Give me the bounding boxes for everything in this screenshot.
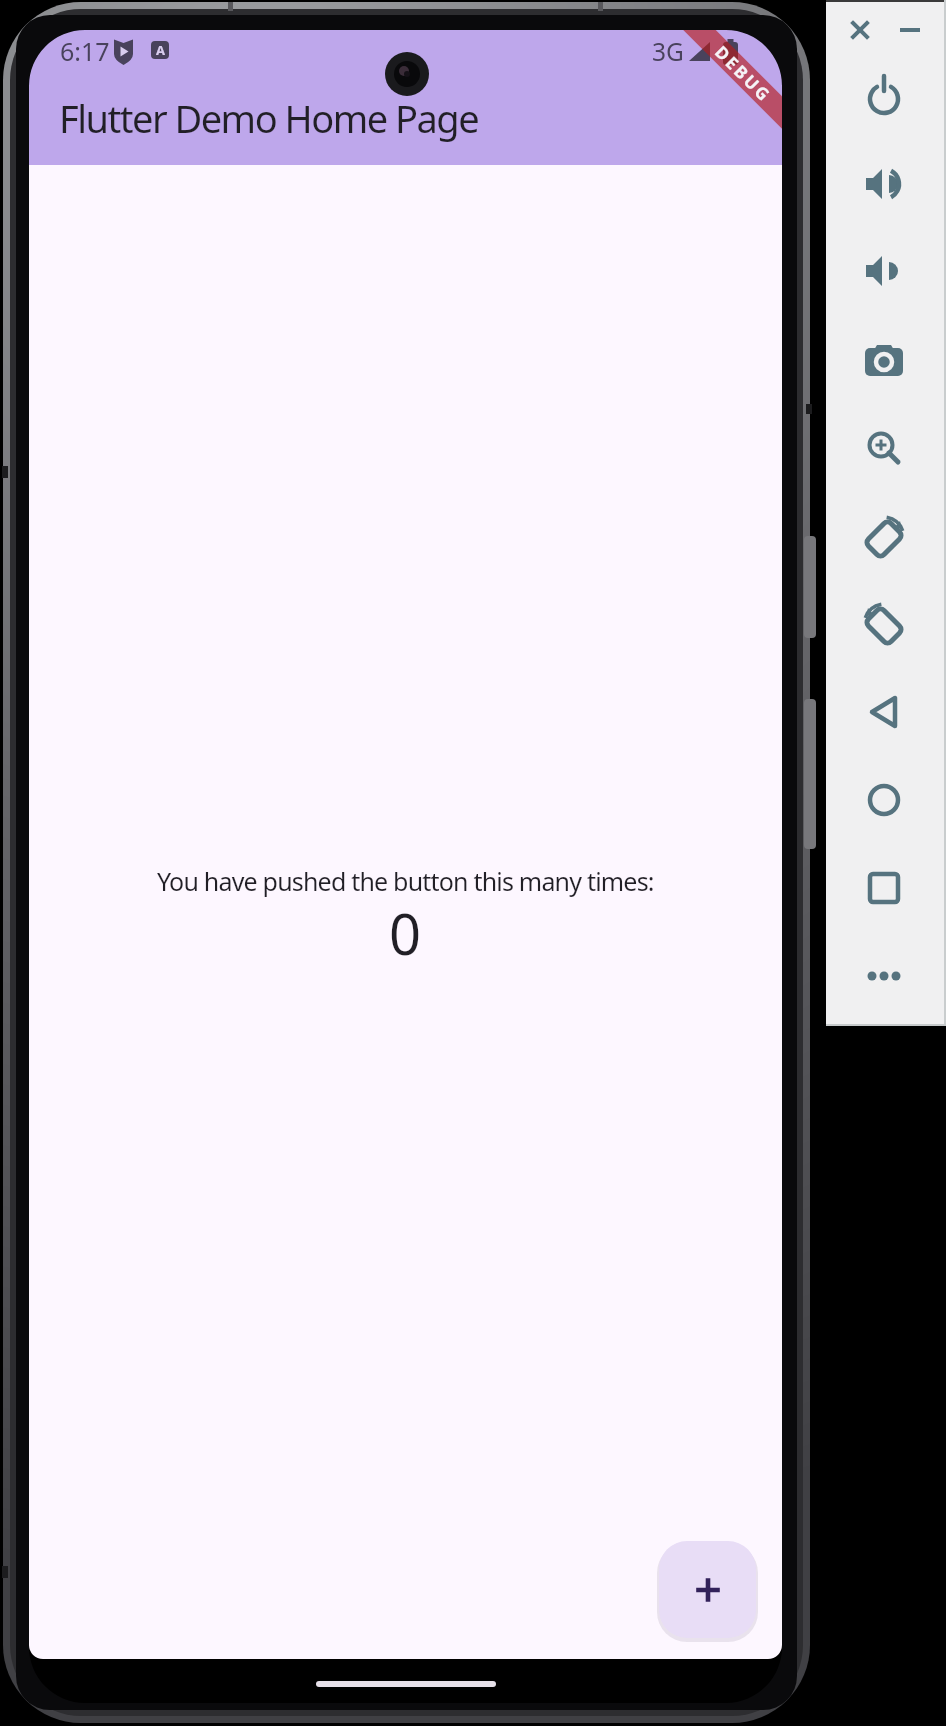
button[interactable] (860, 160, 908, 208)
button[interactable] (860, 335, 908, 383)
button[interactable] (860, 73, 908, 121)
button[interactable] (860, 424, 908, 472)
button[interactable] (886, 6, 934, 54)
staticText: 6:17 (60, 34, 110, 68)
staticText: A (156, 41, 165, 59)
button[interactable] (860, 247, 908, 295)
staticText: DEBUG (710, 41, 777, 107)
staticText: You have pushed the button this many tim… (157, 864, 654, 898)
button[interactable] (860, 513, 908, 561)
staticText: 3G (652, 35, 684, 68)
staticText: Flutter Demo Home Page (59, 92, 479, 144)
button[interactable] (860, 688, 908, 736)
staticText: 0 (389, 895, 422, 971)
button[interactable] (860, 864, 908, 912)
button[interactable] (860, 952, 908, 1000)
button[interactable] (836, 6, 884, 54)
button[interactable] (860, 600, 908, 648)
button[interactable] (860, 776, 908, 824)
button[interactable] (659, 1541, 756, 1638)
